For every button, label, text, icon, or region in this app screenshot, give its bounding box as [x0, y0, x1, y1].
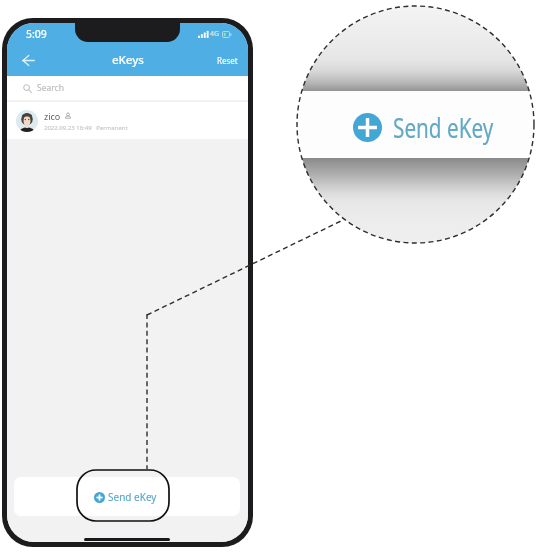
staticText: 2022.09.23 16:49 Permanent [44, 124, 128, 132]
button[interactable]: Reset [215, 51, 240, 70]
staticText: 5:09 [26, 27, 47, 41]
button[interactable]: Back [16, 48, 40, 72]
button[interactable]: Search [7, 76, 248, 100]
staticText: eKeys [112, 52, 144, 68]
staticText: Reset [217, 55, 238, 66]
button[interactable]: Send eKey [353, 93, 535, 160]
staticText: zico [44, 110, 61, 122]
staticText: Send eKey [393, 108, 494, 146]
staticText: Send eKey [108, 490, 157, 504]
button[interactable]: Send eKey [14, 477, 240, 516]
staticText: Search [37, 82, 64, 94]
staticText: 4G [210, 29, 220, 39]
button[interactable]: zico [7, 102, 248, 139]
